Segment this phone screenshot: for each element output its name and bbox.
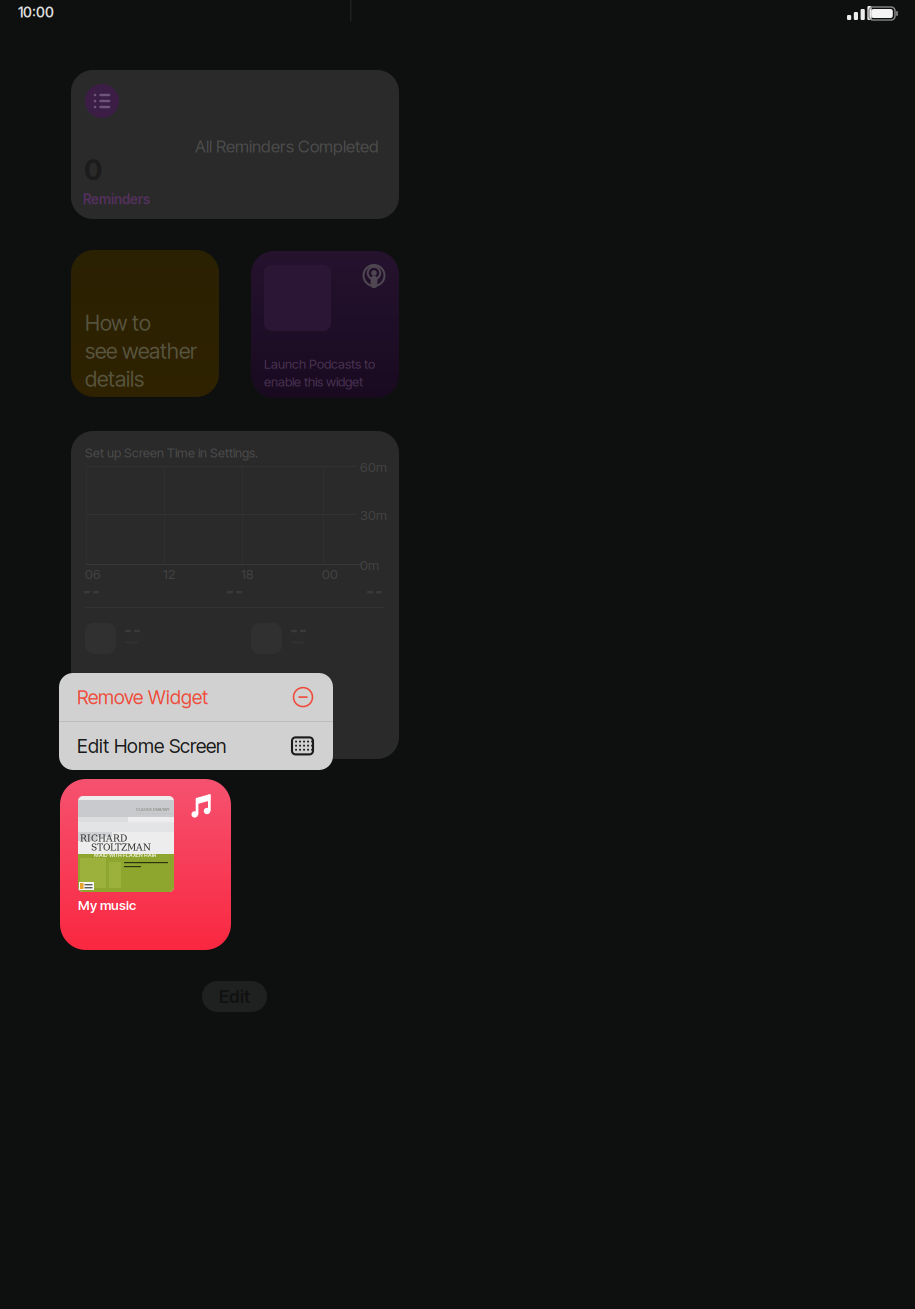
staticText: details	[85, 366, 144, 392]
staticText: 10:00	[18, 4, 54, 21]
button[interactable]: CLAUDE DEBUSSY	[60, 779, 231, 950]
staticText: Reminders	[83, 191, 150, 208]
staticText: 00	[322, 566, 338, 582]
staticText: Launch Podcasts to	[264, 356, 375, 372]
staticText: All Reminders Completed	[195, 136, 379, 156]
staticText: Edit Home Screen	[77, 734, 226, 758]
staticText: 30m	[360, 507, 387, 523]
button[interactable]: All Reminders Completed	[71, 70, 399, 219]
staticText: 18	[241, 566, 254, 582]
staticText: STOLTZMAN	[91, 842, 151, 853]
staticText: 06	[85, 566, 101, 582]
staticText: 0m	[360, 557, 379, 573]
staticText: enable this widget	[264, 374, 363, 390]
button[interactable]: Remove Widget	[59, 673, 333, 721]
staticText: 12	[163, 566, 175, 582]
button[interactable]: Edit	[202, 981, 267, 1012]
staticText: MAID WITH FLAXEN HAIR	[94, 852, 156, 858]
staticText: CLAUDE DEBUSSY	[136, 807, 170, 812]
staticText: Remove Widget	[77, 685, 208, 709]
staticText: Edit	[219, 985, 250, 1007]
button[interactable]: How to	[71, 250, 219, 397]
button[interactable]: Launch Podcasts to	[251, 251, 399, 398]
staticText: 60m	[360, 459, 387, 475]
button[interactable]: Set up Screen Time in Settings.	[71, 431, 399, 759]
staticText: RICHARD	[80, 833, 127, 844]
button[interactable]: Edit Home Screen	[59, 722, 333, 770]
staticText: see weather	[85, 338, 197, 364]
staticText: How to	[85, 310, 151, 336]
staticText: Set up Screen Time in Settings.	[85, 445, 258, 460]
staticText: 0	[84, 153, 102, 187]
staticText: My music	[78, 897, 136, 913]
